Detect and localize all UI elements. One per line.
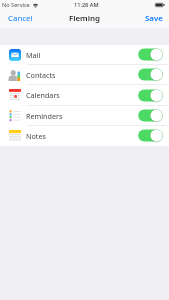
button[interactable]: Calendars <box>0 85 169 106</box>
staticText: 11:28 AM <box>74 1 99 9</box>
button[interactable]: Toggle <box>138 109 163 122</box>
staticText: Contacts <box>26 70 56 80</box>
staticText: Calendars <box>26 90 60 100</box>
staticText: Mail <box>26 50 41 60</box>
staticText: Notes <box>26 131 46 141</box>
staticText: Reminders <box>26 111 63 121</box>
button[interactable]: Toggle <box>138 68 163 81</box>
button[interactable]: Reminders <box>0 106 169 126</box>
button[interactable]: Save <box>139 11 169 28</box>
staticText: Fleming <box>69 13 100 24</box>
staticText: No Service <box>2 1 30 9</box>
button[interactable]: Toggle <box>138 129 163 142</box>
button[interactable]: Toggle <box>138 48 163 61</box>
staticText: Cancel <box>8 13 33 24</box>
button[interactable]: Cancel <box>0 11 39 28</box>
button[interactable]: Contacts <box>0 65 169 85</box>
staticText: Save <box>145 13 163 24</box>
button[interactable]: Mail <box>0 45 169 65</box>
button[interactable]: Toggle <box>138 89 163 102</box>
button[interactable]: Notes <box>0 126 169 146</box>
